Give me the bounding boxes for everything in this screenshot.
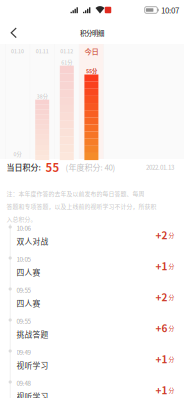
staticText: 分	[168, 324, 174, 332]
staticText: +2	[155, 290, 167, 304]
staticText: 10:07	[161, 4, 179, 16]
staticText: +6	[155, 321, 167, 335]
staticText: 入总积分。	[6, 215, 36, 223]
staticText: +1	[155, 383, 167, 397]
staticText: 挑战答题	[16, 328, 48, 340]
staticText: +1	[155, 352, 167, 366]
button[interactable]: 返回	[2, 21, 26, 45]
staticText: 当日积分:	[6, 161, 40, 173]
staticText: 分	[168, 293, 174, 301]
button[interactable]: 09:48	[0, 379, 184, 398]
staticText: 今日	[84, 46, 98, 56]
button[interactable]: 09:55	[0, 317, 184, 348]
staticText: 双人对战	[16, 235, 48, 247]
staticText: 答题和专项答题，以及上线前的视听学习不计分，所获积	[6, 202, 156, 210]
staticText: 10:05	[16, 254, 30, 263]
staticText: 注：本年度作答的去年及以前发布的每日答题、每周	[6, 189, 144, 198]
staticText: +2	[155, 228, 167, 242]
staticText: 视听学习	[16, 390, 48, 398]
staticText: 视听学习	[16, 359, 48, 371]
staticText: 09:55	[16, 316, 30, 325]
staticText: 分	[168, 262, 174, 270]
staticText: 38分	[37, 92, 48, 100]
staticText: (年度积分: 40)	[65, 161, 115, 173]
staticText: 积分明细	[80, 28, 104, 38]
staticText: +1	[155, 259, 167, 273]
staticText: 01.11	[36, 47, 49, 55]
staticText: 分	[168, 231, 174, 239]
staticText: 四人赛	[16, 266, 40, 278]
staticText: 10:06	[16, 223, 30, 232]
staticText: 分	[168, 386, 174, 394]
staticText: 分	[168, 355, 174, 363]
staticText: 01.10	[11, 47, 24, 55]
staticText: 61分	[61, 58, 72, 66]
button[interactable]: 10:05	[0, 255, 184, 286]
staticText: 09:49	[16, 347, 30, 356]
staticText: 2022.01.13	[146, 163, 174, 171]
button[interactable]: 09:55	[0, 286, 184, 317]
staticText: 0分	[14, 150, 22, 158]
staticText: 09:48	[16, 378, 30, 387]
button[interactable]: 09:49	[0, 348, 184, 379]
staticText: 01.12	[60, 47, 73, 55]
staticText: 55分	[86, 67, 97, 75]
button[interactable]: 10:06	[0, 224, 184, 255]
staticText: 四人赛	[16, 297, 40, 309]
staticText: 55	[45, 159, 59, 175]
staticText: 09:55	[16, 285, 30, 294]
